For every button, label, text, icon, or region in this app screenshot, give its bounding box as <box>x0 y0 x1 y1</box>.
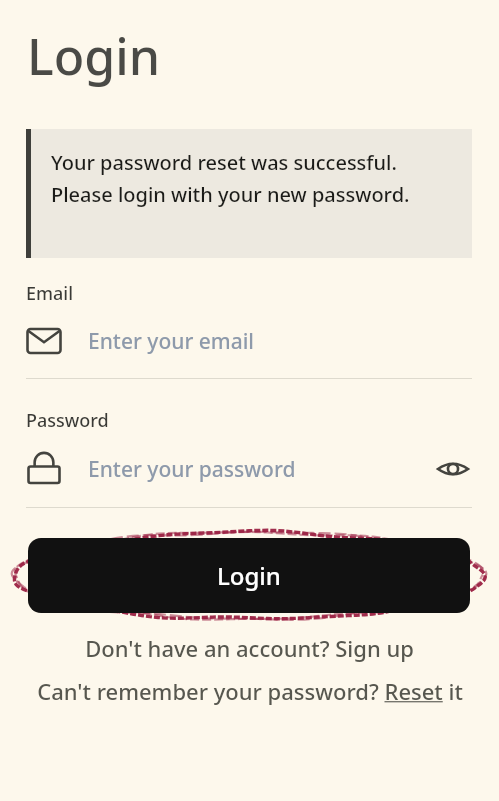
staticText: Password <box>26 408 109 433</box>
staticText: Your password reset was successful. Plea… <box>51 149 450 208</box>
button[interactable]: Don't have an account? Sign up <box>0 633 499 663</box>
staticText: Login <box>217 559 281 592</box>
staticText: Email <box>26 281 74 306</box>
staticText: Enter your email <box>88 327 255 356</box>
button[interactable]: Login <box>28 538 470 613</box>
button[interactable]: Enter your email <box>26 326 472 356</box>
staticText: Don't have an account? Sign up <box>85 633 414 663</box>
staticText: Login <box>27 22 161 90</box>
staticText: Can't remember your password? Reset it <box>37 676 463 706</box>
button[interactable]: Show password <box>434 453 472 485</box>
button[interactable]: Can't remember your password? Reset it <box>24 676 475 706</box>
staticText: Enter your password <box>88 455 296 484</box>
button[interactable]: Enter your password <box>26 453 434 485</box>
